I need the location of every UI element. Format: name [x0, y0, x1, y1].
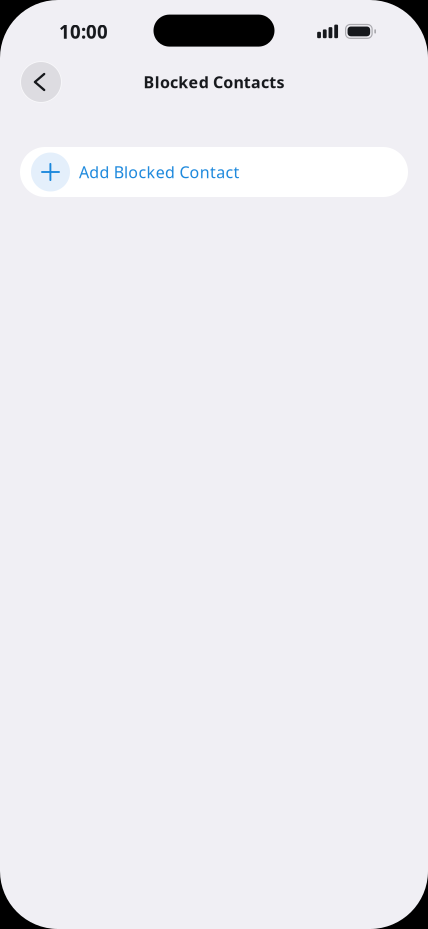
button[interactable]: Add Blocked Contact — [20, 147, 408, 197]
staticText: Add Blocked Contact — [79, 161, 240, 183]
staticText: 10:00 — [59, 19, 108, 44]
staticText: Blocked Contacts — [143, 71, 284, 93]
button[interactable]: Back — [20, 61, 62, 103]
